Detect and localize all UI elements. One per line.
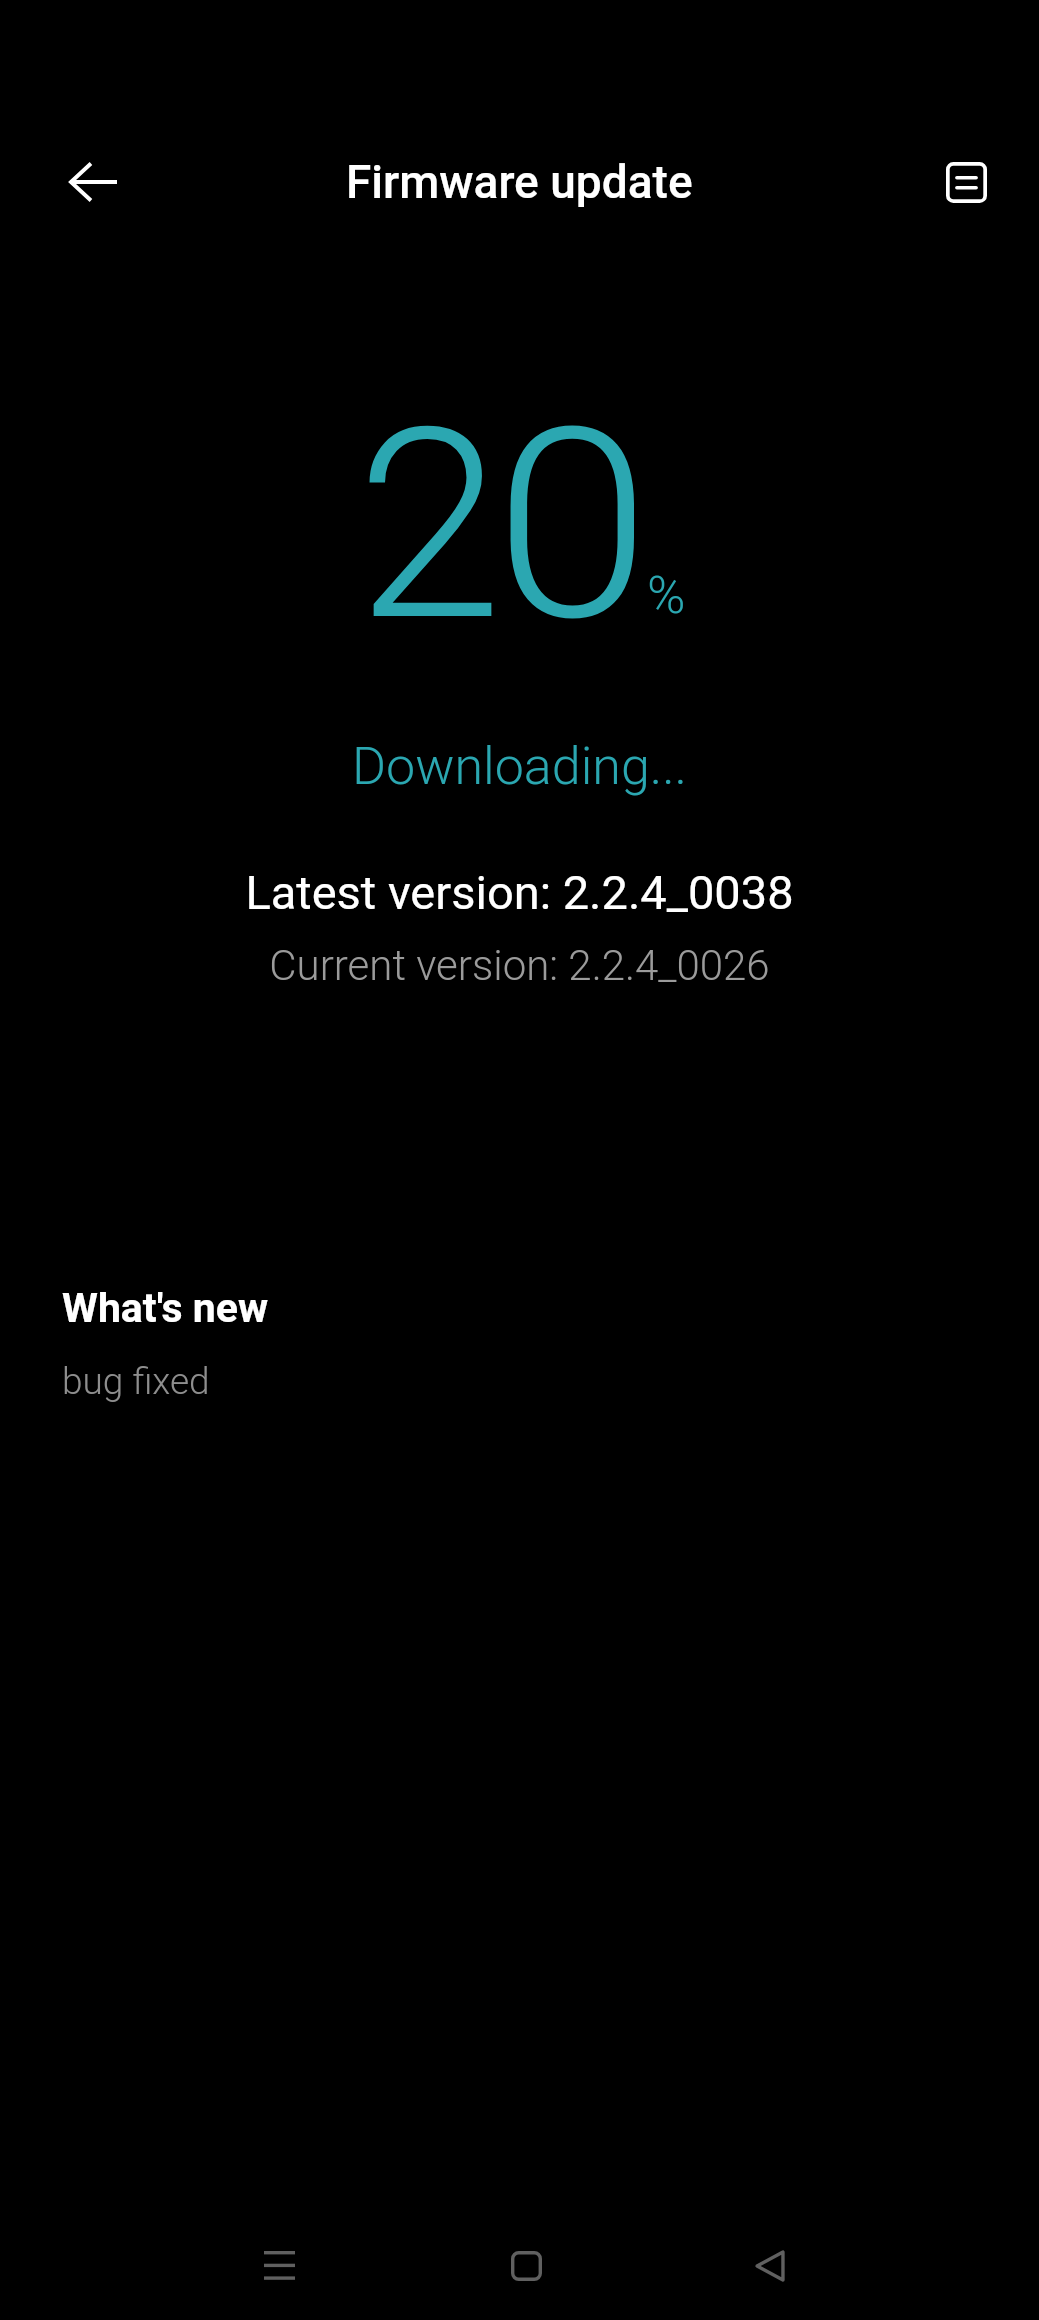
staticText: Firmware update [346,155,693,209]
staticText: What's new [62,1284,269,1332]
button[interactable]: Home [444,2209,608,2320]
staticText: 2 [356,371,503,680]
button[interactable]: Recent apps [197,2209,361,2320]
button[interactable]: Update log [921,137,1011,227]
staticText: 0 [494,371,651,680]
staticText: Current version: 2.2.4_0026 [0,941,1039,990]
button[interactable]: Back [687,2209,851,2320]
staticText: Latest version: 2.2.4_0038 [0,865,1039,920]
staticText: Downloading... [0,736,1039,797]
staticText: bug fixed [62,1360,210,1403]
button[interactable]: Navigate up [48,137,138,227]
staticText: % [647,565,686,626]
